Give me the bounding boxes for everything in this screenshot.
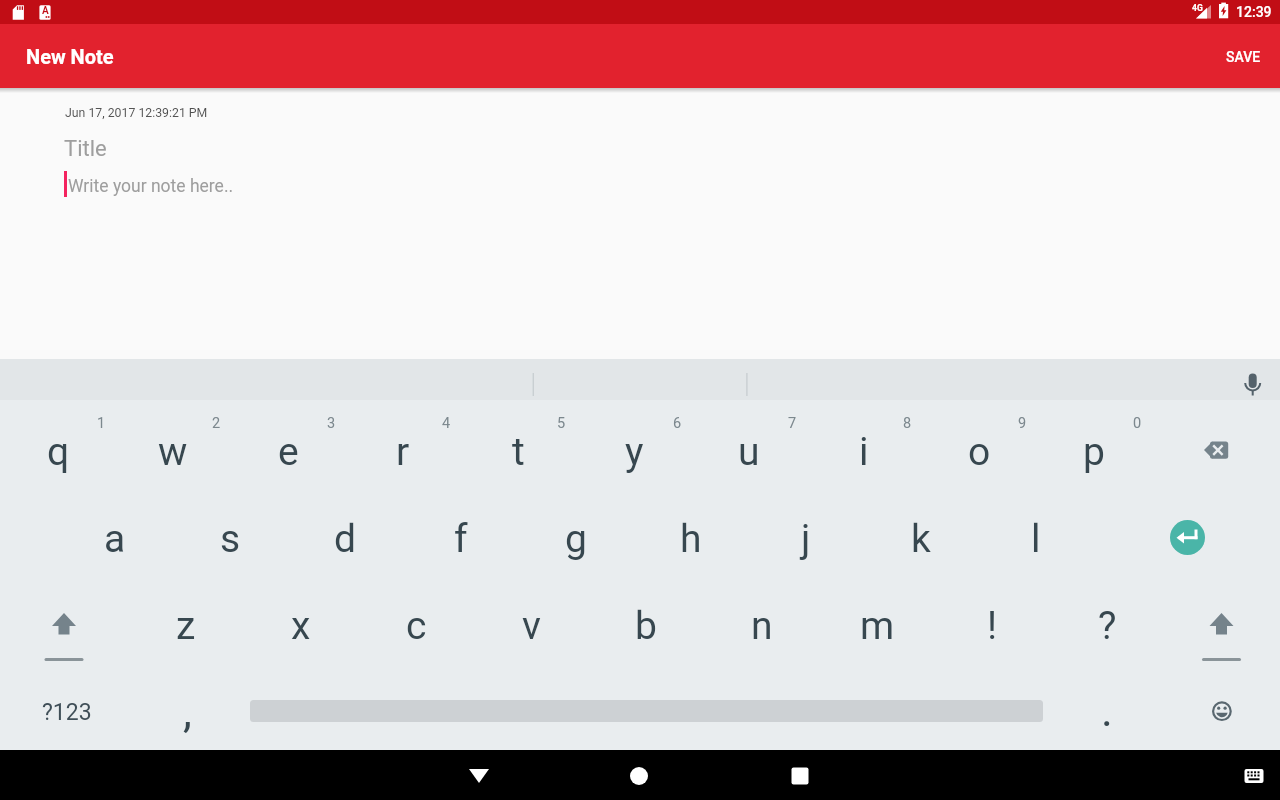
staticText: New Note: [26, 45, 114, 68]
button[interactable]: k: [864, 496, 978, 582]
button[interactable]: i: [807, 409, 921, 495]
button[interactable]: [1164, 582, 1274, 668]
staticText: o: [968, 429, 991, 475]
staticText: t: [512, 429, 525, 475]
staticText: A: [42, 5, 49, 17]
staticText: 3: [327, 415, 336, 432]
staticText: .: [1101, 684, 1113, 737]
staticText: m: [860, 603, 895, 649]
button[interactable]: s: [173, 496, 287, 582]
button[interactable]: p: [1037, 409, 1151, 495]
button[interactable]: w: [116, 409, 230, 495]
button[interactable]: ,: [130, 663, 244, 759]
button[interactable]: f: [404, 496, 518, 582]
staticText: 12:39: [1236, 4, 1272, 20]
button[interactable]: m: [820, 583, 934, 669]
button[interactable]: [1170, 669, 1274, 755]
button[interactable]: e: [231, 409, 345, 495]
button[interactable]: q: [1, 409, 115, 495]
button[interactable]: j: [749, 496, 863, 582]
button[interactable]: c: [359, 583, 473, 669]
staticText: e: [278, 429, 299, 475]
button[interactable]: v: [474, 583, 588, 669]
button[interactable]: z: [129, 583, 243, 669]
button[interactable]: ?123: [10, 669, 124, 755]
button[interactable]: u: [692, 409, 806, 495]
staticText: k: [911, 516, 931, 562]
staticText: g: [565, 516, 587, 562]
staticText: i: [859, 429, 869, 475]
staticText: 2: [212, 415, 221, 432]
button[interactable]: a: [58, 496, 172, 582]
staticText: x: [291, 603, 311, 649]
staticText: r: [396, 429, 410, 475]
staticText: 6: [673, 415, 682, 432]
staticText: b: [635, 603, 657, 649]
button[interactable]: .: [1057, 662, 1157, 758]
staticText: f: [454, 516, 468, 562]
staticText: w: [158, 429, 188, 475]
staticText: Jun 17, 2017 12:39:21 PM: [65, 106, 208, 120]
staticText: 8: [903, 415, 912, 432]
staticText: a: [104, 516, 126, 562]
staticText: 0: [1133, 415, 1142, 432]
button[interactable]: o: [922, 409, 1036, 495]
button[interactable]: t: [461, 409, 575, 495]
button[interactable]: b: [589, 583, 703, 669]
button[interactable]: l: [979, 496, 1093, 582]
staticText: !: [987, 603, 998, 649]
staticText: Title: [64, 136, 107, 162]
button[interactable]: r: [346, 409, 460, 495]
staticText: j: [801, 516, 811, 562]
staticText: h: [680, 516, 702, 562]
staticText: z: [176, 603, 196, 649]
button[interactable]: [1228, 362, 1278, 398]
button[interactable]: g: [519, 496, 633, 582]
button[interactable]: !: [935, 583, 1049, 669]
staticText: p: [1083, 429, 1105, 475]
button[interactable]: ?: [1050, 583, 1164, 669]
button[interactable]: d: [288, 496, 402, 582]
staticText: l: [1031, 516, 1041, 562]
button[interactable]: [1160, 410, 1274, 496]
staticText: ?: [1098, 603, 1117, 649]
button[interactable]: y: [577, 409, 691, 495]
staticText: n: [751, 603, 773, 649]
button[interactable]: [1170, 520, 1205, 555]
staticText: 7: [788, 415, 797, 432]
staticText: Write your note here..: [68, 176, 234, 197]
staticText: v: [522, 603, 541, 649]
staticText: 1: [97, 415, 106, 432]
staticText: 4: [442, 415, 451, 432]
button[interactable]: [760, 752, 840, 798]
button[interactable]: n: [705, 583, 819, 669]
staticText: s: [220, 516, 241, 562]
staticText: 4G: [1192, 3, 1203, 13]
staticText: c: [406, 603, 427, 649]
button[interactable]: [599, 752, 679, 798]
staticText: q: [47, 429, 70, 475]
staticText: SAVE: [1226, 49, 1261, 65]
staticText: ,: [183, 685, 192, 738]
button[interactable]: [10, 582, 120, 668]
staticText: 5: [557, 415, 566, 432]
button[interactable]: [1224, 752, 1280, 798]
staticText: ?123: [42, 699, 92, 726]
staticText: u: [738, 429, 760, 475]
button[interactable]: SAVE: [1208, 25, 1278, 89]
button[interactable]: x: [244, 583, 358, 669]
staticText: 9: [1018, 415, 1027, 432]
staticText: y: [625, 429, 644, 475]
staticText: d: [334, 516, 356, 562]
button[interactable]: [439, 752, 519, 798]
button[interactable]: h: [634, 496, 748, 582]
